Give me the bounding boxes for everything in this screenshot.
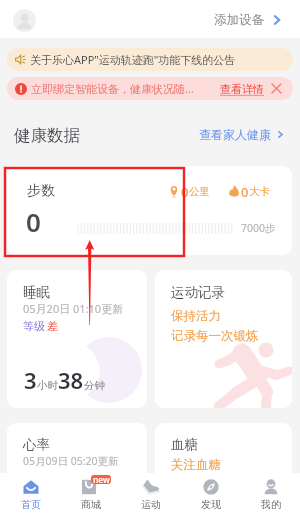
staticText: 小时 bbox=[37, 379, 58, 392]
staticText: 首页 bbox=[21, 498, 41, 511]
staticText: 血糖 bbox=[171, 436, 198, 453]
button[interactable]: 关于乐心APP"运动轨迹跑"功能下线的公告 bbox=[7, 48, 293, 71]
button[interactable]: 睡眠 bbox=[7, 270, 147, 408]
staticText: 商城 bbox=[81, 498, 101, 511]
staticText: 发现 bbox=[201, 498, 221, 511]
staticText: new bbox=[93, 474, 110, 486]
staticText: 睡眠 bbox=[23, 284, 50, 301]
staticText: 05月20日 01:10更新 bbox=[23, 301, 124, 316]
staticText: 立即绑定智能设备，健康状况随... bbox=[31, 81, 194, 96]
button[interactable]: 步数 bbox=[7, 166, 292, 255]
staticText: 关于乐心APP"运动轨迹跑"功能下线的公告 bbox=[30, 52, 236, 67]
staticText: 保持活力 bbox=[171, 308, 221, 324]
button[interactable]: 立即绑定智能设备，健康状况随... bbox=[7, 77, 293, 100]
staticText: 步数 bbox=[27, 182, 55, 200]
button[interactable]: 首页 bbox=[1, 473, 61, 515]
button[interactable]: 心率 bbox=[7, 423, 147, 493]
staticText: 05月09日 05:20更新 bbox=[23, 454, 119, 468]
staticText: 查看详情 bbox=[220, 82, 264, 96]
staticText: 运动 bbox=[141, 498, 161, 511]
staticText: 记录每一次锻炼 bbox=[171, 328, 259, 344]
staticText: 查看家人健康 bbox=[199, 127, 271, 142]
staticText: 运动记录 bbox=[171, 284, 225, 301]
staticText: 公里 bbox=[189, 185, 210, 198]
staticText: 心率 bbox=[23, 436, 50, 453]
staticText: 3 bbox=[24, 365, 37, 395]
button[interactable]: new bbox=[61, 473, 121, 515]
staticText: 38 bbox=[58, 365, 84, 395]
button[interactable]: 查看家人健康 bbox=[199, 125, 286, 143]
staticText: 7000步 bbox=[241, 221, 276, 235]
staticText: 0 bbox=[181, 183, 189, 199]
staticText: 我的 bbox=[261, 498, 281, 511]
staticText: 健康数据 bbox=[14, 125, 80, 146]
staticText: 差 bbox=[47, 319, 58, 333]
button[interactable]: 血糖 bbox=[155, 423, 292, 493]
staticText: 关注血糖 bbox=[171, 457, 221, 473]
staticText: 大卡 bbox=[249, 185, 270, 198]
staticText: 添加设备 bbox=[214, 12, 264, 28]
button[interactable]: 运动 bbox=[121, 473, 181, 515]
button[interactable]: 我的 bbox=[241, 473, 300, 515]
other: Close bbox=[272, 84, 281, 93]
staticText: 等级 bbox=[23, 319, 45, 333]
button[interactable]: 发现 bbox=[181, 473, 241, 515]
button[interactable]: Profile bbox=[13, 9, 36, 32]
button[interactable]: 添加设备 bbox=[214, 11, 284, 28]
staticText: 0 bbox=[241, 183, 249, 199]
staticText: 0 bbox=[26, 204, 41, 239]
staticText: 分钟 bbox=[84, 379, 105, 392]
button[interactable]: 运动记录 bbox=[155, 270, 292, 408]
